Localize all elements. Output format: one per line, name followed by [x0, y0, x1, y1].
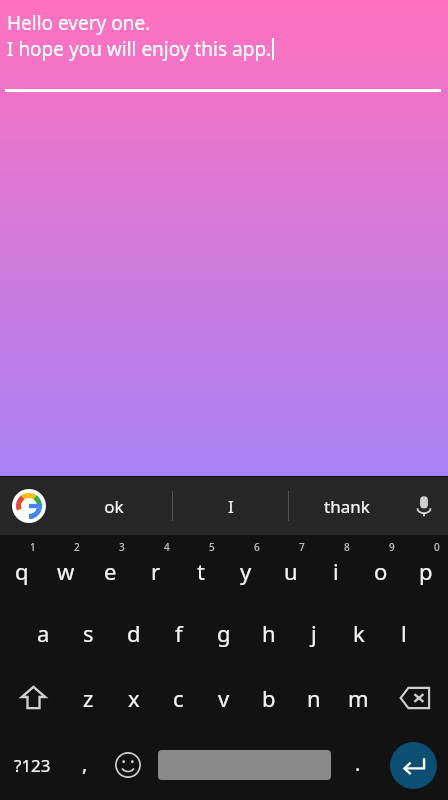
button[interactable]: i [313, 535, 358, 600]
button[interactable]: ?123 [0, 730, 65, 800]
staticText: 7 [299, 540, 305, 554]
staticText: 4 [164, 540, 170, 554]
button[interactable]: o [358, 535, 403, 600]
button[interactable]: thank [289, 477, 404, 535]
button[interactable]: b [246, 665, 291, 730]
staticText: w [57, 556, 75, 586]
staticText: h [262, 618, 276, 648]
button[interactable]: h [246, 600, 291, 665]
staticText: x [128, 683, 140, 713]
staticText: b [262, 683, 276, 713]
button[interactable]: j [291, 600, 336, 665]
button[interactable]: a [21, 600, 66, 665]
button[interactable]: n [291, 665, 336, 730]
staticText: t [197, 556, 205, 586]
button[interactable]: x [111, 665, 156, 730]
staticText: 9 [389, 540, 395, 554]
staticText: d [127, 618, 141, 648]
staticText: ok [104, 495, 124, 518]
staticText: a [37, 618, 50, 648]
button[interactable]: v [201, 665, 246, 730]
staticText: p [419, 556, 433, 586]
staticText: q [15, 556, 29, 586]
button[interactable]: e [88, 535, 133, 600]
staticText: I hope you will enjoy this app. [7, 36, 272, 62]
staticText: k [353, 618, 365, 648]
staticText: ?123 [14, 754, 51, 777]
staticText: 8 [344, 540, 350, 554]
staticText: s [83, 618, 94, 648]
staticText: o [374, 556, 388, 586]
staticText: f [175, 618, 183, 648]
button[interactable]: k [336, 600, 381, 665]
staticText: , [82, 750, 88, 777]
staticText: thank [324, 495, 370, 518]
staticText: 6 [254, 540, 260, 554]
button[interactable]: Emoji [105, 730, 150, 800]
button[interactable]: m [336, 665, 381, 730]
staticText: j [311, 618, 317, 648]
button[interactable]: Backspace [381, 665, 448, 730]
staticText: 2 [74, 540, 80, 554]
button[interactable]: Space [150, 730, 338, 800]
button[interactable]: r [133, 535, 178, 600]
staticText: e [104, 556, 117, 586]
staticText: g [217, 618, 231, 648]
staticText: l [401, 618, 407, 648]
button[interactable]: y [223, 535, 268, 600]
staticText: 1 [30, 540, 36, 554]
staticText: u [284, 556, 298, 586]
button[interactable]: z [66, 665, 111, 730]
button[interactable]: ok [56, 477, 172, 535]
button[interactable]: Voice input [408, 490, 440, 522]
staticText: 5 [209, 540, 215, 554]
button[interactable]: I [173, 477, 288, 535]
button[interactable]: Google [12, 489, 46, 523]
button[interactable]: g [201, 600, 246, 665]
staticText: n [307, 683, 321, 713]
button[interactable]: l [381, 600, 426, 665]
staticText: r [151, 556, 161, 586]
button[interactable]: w [44, 535, 88, 600]
button[interactable]: , [65, 730, 105, 800]
button[interactable]: Shift [0, 665, 66, 730]
staticText: 3 [119, 540, 125, 554]
staticText: I [228, 495, 234, 518]
staticText: Hello every one. [7, 10, 151, 36]
staticText: z [83, 683, 94, 713]
button[interactable]: c [156, 665, 201, 730]
staticText: m [348, 683, 369, 713]
button[interactable]: d [111, 600, 156, 665]
button[interactable]: q [0, 535, 44, 600]
staticText: 0 [434, 540, 440, 554]
button[interactable]: s [66, 600, 111, 665]
button[interactable]: . [338, 730, 378, 800]
button[interactable]: u [268, 535, 313, 600]
button[interactable]: t [178, 535, 223, 600]
staticText: . [355, 750, 361, 777]
button[interactable]: f [156, 600, 201, 665]
staticText: c [173, 683, 184, 713]
staticText: v [218, 683, 230, 713]
button[interactable]: p [403, 535, 448, 600]
staticText: y [240, 556, 252, 586]
button[interactable]: Enter [378, 730, 448, 800]
staticText: i [333, 556, 339, 586]
